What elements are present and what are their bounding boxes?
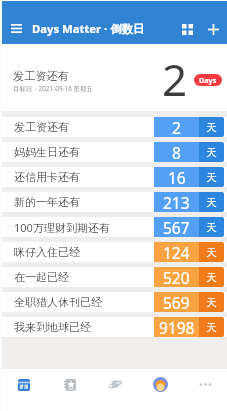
button[interactable]: 100万理财到期还有: [0, 217, 227, 237]
button[interactable]: Profile: [137, 369, 182, 411]
staticText: 567: [163, 217, 190, 237]
staticText: 我来到地球已经: [14, 320, 91, 334]
button[interactable]: 还信用卡还有: [0, 167, 227, 187]
staticText: 全职猎人休刊已经: [14, 295, 102, 309]
staticText: Days: [199, 75, 217, 85]
staticText: 2: [172, 117, 181, 137]
staticText: 9198: [159, 317, 195, 337]
staticText: 124: [163, 242, 190, 262]
staticText: 2: [162, 49, 188, 109]
button[interactable]: Calendar: [0, 369, 46, 411]
staticText: 569: [163, 292, 190, 312]
button[interactable]: 在一起已经: [0, 267, 227, 287]
staticText: 213: [163, 192, 190, 212]
button[interactable]: 妈妈生日还有: [0, 142, 227, 162]
staticText: 天: [206, 121, 217, 134]
staticText: Days Matter · 倒数日: [32, 21, 145, 36]
staticText: 天: [206, 221, 217, 234]
staticText: 天: [206, 321, 217, 334]
button[interactable]: 发工资还有: [0, 44, 227, 111]
staticText: 天: [206, 171, 217, 184]
button[interactable]: 全职猎人休刊已经: [0, 292, 227, 312]
staticText: 新的一年还有: [14, 195, 80, 209]
staticText: 发工资还有: [14, 120, 69, 134]
staticText: 在一起已经: [14, 270, 69, 284]
button[interactable]: More: [182, 369, 227, 411]
button[interactable]: Grid view: [174, 16, 200, 42]
staticText: 妈妈生日还有: [14, 145, 80, 159]
staticText: 天: [206, 246, 217, 259]
staticText: 目标日：2021-09-16 星期五: [13, 84, 93, 93]
button[interactable]: Discover: [92, 369, 137, 411]
button[interactable]: 我来到地球已经: [0, 317, 227, 337]
button[interactable]: 新的一年还有: [0, 192, 227, 212]
staticText: 天: [206, 146, 217, 159]
staticText: 咪仔入住已经: [14, 245, 80, 259]
button[interactable]: Menu: [5, 17, 28, 40]
staticText: 8: [172, 142, 181, 162]
button[interactable]: 咪仔入住已经: [0, 242, 227, 262]
staticText: 天: [206, 196, 217, 209]
button[interactable]: Add: [200, 16, 226, 42]
button[interactable]: Photos: [46, 369, 92, 411]
staticText: 还信用卡还有: [14, 170, 80, 184]
staticText: 发工资还有: [13, 69, 69, 83]
staticText: 100万理财到期还有: [14, 220, 110, 235]
staticText: 520: [163, 267, 190, 287]
staticText: 天: [206, 296, 217, 309]
staticText: 16: [168, 167, 186, 187]
button[interactable]: 发工资还有: [0, 117, 227, 137]
staticText: 天: [206, 271, 217, 284]
